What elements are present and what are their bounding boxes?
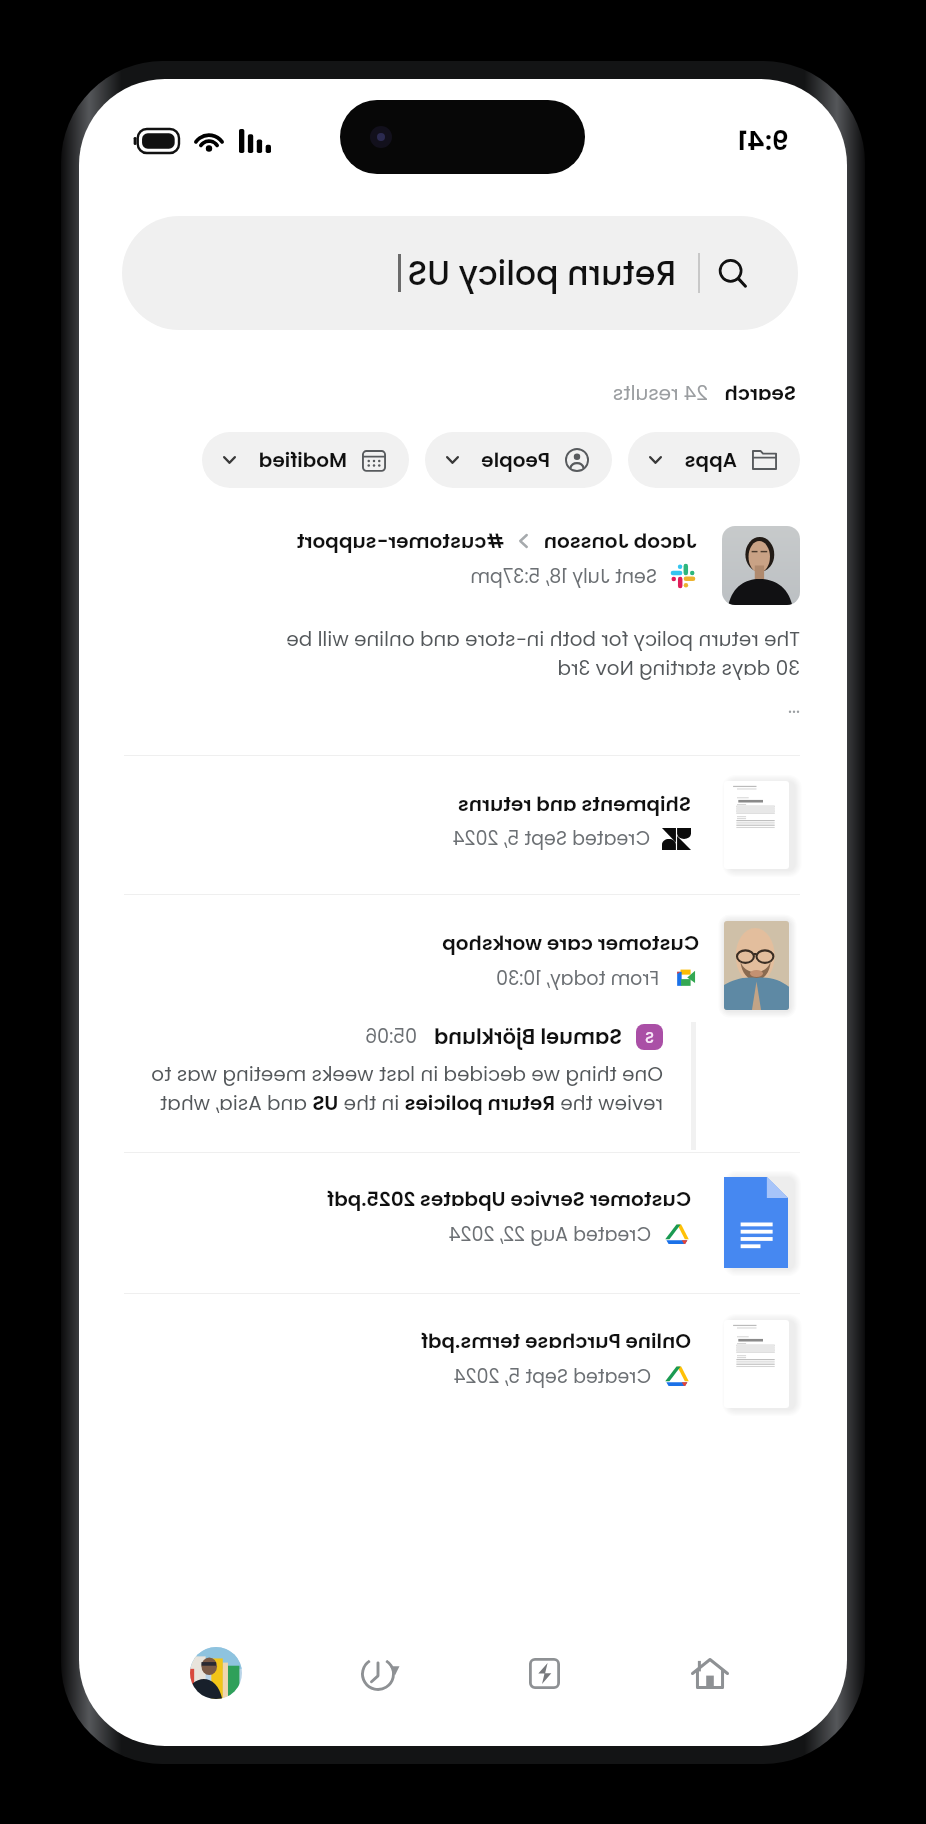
staticText: S	[644, 1027, 654, 1048]
button[interactable]: Online Purchase terms.pdf	[79, 1293, 847, 1434]
button[interactable]: Return policy US	[122, 216, 798, 330]
staticText: Return policy US	[407, 250, 676, 296]
button[interactable]: Customer care workshop	[79, 894, 847, 1152]
staticText: Jacob Jonsson	[543, 527, 697, 555]
button[interactable]: Apps	[628, 432, 800, 488]
staticText: Created Aug 22, 2024	[448, 1221, 651, 1248]
staticText: 9:41	[737, 122, 789, 160]
staticText: One thing we decided in last weeks meeti…	[151, 1060, 663, 1117]
staticText: 05:06	[365, 1023, 417, 1050]
button[interactable]: Home	[668, 1631, 752, 1715]
staticText: From today, 10:30	[496, 965, 659, 992]
staticText: 24 results	[612, 379, 708, 407]
staticText: Created Sept 5, 2024	[453, 1363, 651, 1390]
staticText: People	[481, 446, 550, 474]
staticText: Samuel Björklund	[433, 1022, 622, 1051]
button[interactable]: People	[425, 432, 612, 488]
staticText: Modified	[258, 446, 347, 474]
staticText: Created Sept 5, 2024	[452, 825, 650, 852]
button[interactable]: Jacob Jonsson	[79, 509, 847, 755]
staticText: ...	[788, 693, 800, 720]
staticText: Online Purchase terms.pdf	[421, 1327, 691, 1355]
button[interactable]: History	[339, 1631, 423, 1715]
staticText: Apps	[684, 446, 737, 474]
staticText: Sent July 18, 5:37pm	[470, 563, 657, 590]
button[interactable]: Modified	[202, 432, 409, 488]
staticText: Shipments and returns	[457, 790, 691, 818]
staticText: Search	[724, 379, 796, 407]
button[interactable]: Customer Service Updates 2025.pdf	[79, 1152, 847, 1293]
staticText: The return policy for both in-store and …	[286, 625, 800, 682]
button[interactable]: Shortcuts	[503, 1631, 587, 1715]
button[interactable]: Shipments and returns	[79, 755, 847, 895]
staticText: Customer care workshop	[442, 929, 699, 957]
button[interactable]: Profile	[174, 1631, 258, 1715]
staticText: #customer-support	[296, 527, 504, 555]
staticText: Customer Service Updates 2025.pdf	[327, 1185, 691, 1213]
